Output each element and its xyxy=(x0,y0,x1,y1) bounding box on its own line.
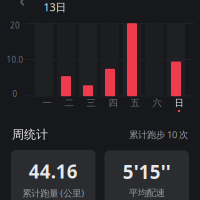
staticText: 六 xyxy=(152,97,161,109)
staticText: 平均配速 xyxy=(129,187,165,199)
button[interactable]: 44.16 xyxy=(11,150,95,200)
staticText: 10.0 xyxy=(6,54,23,65)
staticText: 0 xyxy=(12,89,17,99)
staticText: 2022年03月07日 - 03月13日 xyxy=(43,0,156,14)
staticText: 二 xyxy=(64,97,73,109)
staticText: 日 xyxy=(174,97,183,109)
button[interactable]: Back xyxy=(14,0,30,7)
staticText: 一 xyxy=(42,97,51,109)
staticText: 5'15'' xyxy=(123,159,171,184)
staticText: 累计跑量 (公里) xyxy=(22,187,84,199)
staticText: 三 xyxy=(86,97,95,109)
staticText: 周统计 xyxy=(12,127,48,142)
staticText: 20 xyxy=(10,20,20,31)
staticText: 44.16 xyxy=(29,159,78,184)
staticText: ‹ xyxy=(19,0,24,11)
staticText: 累计跑步 10 次 xyxy=(129,128,188,141)
staticText: 四 xyxy=(108,97,117,109)
button[interactable]: 5'15'' xyxy=(104,150,189,200)
staticText: 五 xyxy=(130,97,139,109)
